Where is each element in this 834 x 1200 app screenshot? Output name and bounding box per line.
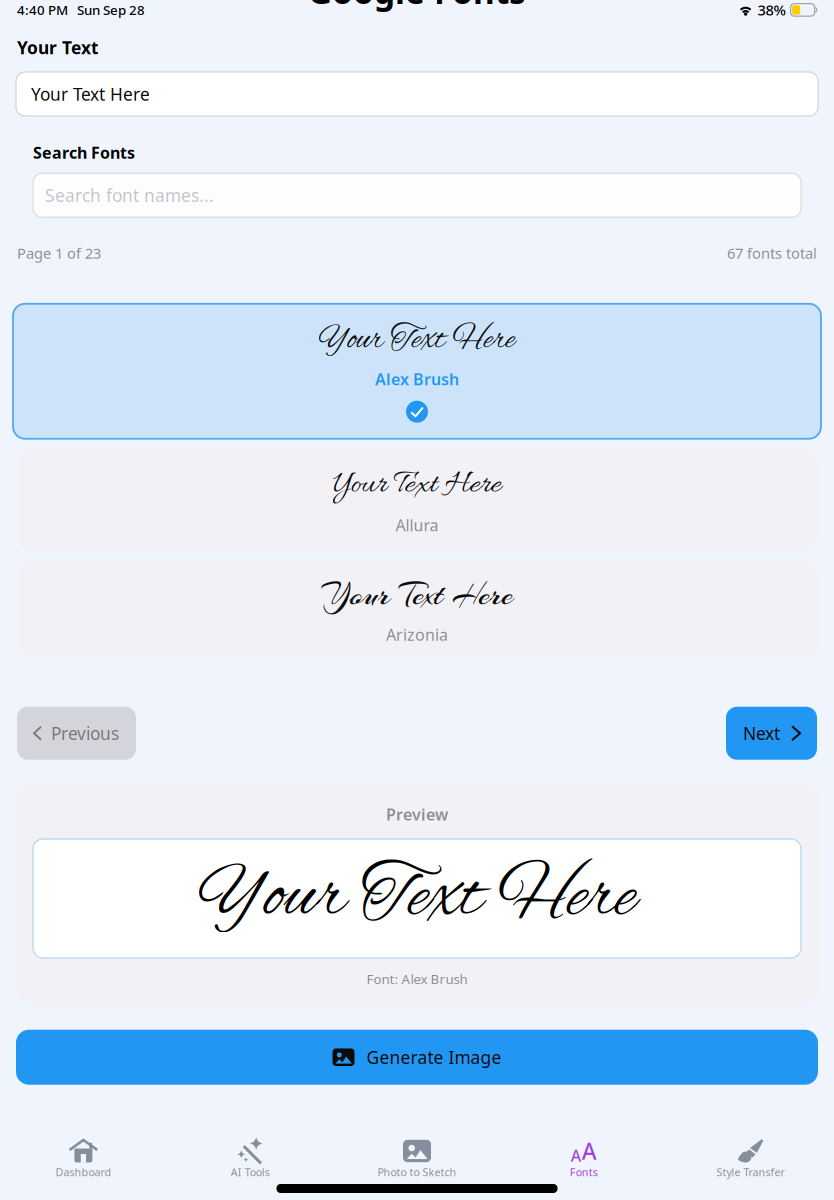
button[interactable]: Dashboard xyxy=(0,1138,167,1190)
staticText: Your Text Here xyxy=(321,574,513,616)
staticText: Allura xyxy=(395,514,438,536)
staticText: Generate Image xyxy=(366,1046,501,1069)
staticText: Alex Brush xyxy=(375,368,459,390)
button[interactable]: Generate Image xyxy=(16,1030,818,1085)
staticText: 67 fonts total xyxy=(727,243,817,263)
button[interactable]: Photo to Sketch xyxy=(334,1138,500,1190)
button[interactable]: Style Transfer xyxy=(667,1138,834,1190)
button[interactable]: Your Text Here xyxy=(0,564,834,656)
button[interactable]: Your Text Here xyxy=(0,452,834,549)
staticText: Your Text xyxy=(17,36,99,59)
button[interactable]: Previous xyxy=(17,707,136,760)
staticText: Arizonia xyxy=(386,624,448,645)
staticText: Previous xyxy=(51,722,119,745)
button[interactable]: A xyxy=(500,1138,667,1190)
staticText: Google Fonts xyxy=(308,0,526,13)
staticText: Font: Alex Brush xyxy=(366,970,467,988)
staticText: 4:40 PM xyxy=(17,1,68,19)
staticText: Search Fonts xyxy=(33,142,135,163)
staticText: Your Text Here xyxy=(318,320,515,361)
staticText: Your Text Here xyxy=(332,465,501,506)
staticText: Dashboard xyxy=(55,1165,111,1179)
staticText: A xyxy=(571,1145,581,1166)
staticText: Photo to Sketch xyxy=(377,1165,456,1179)
staticText: AI Tools xyxy=(231,1165,270,1179)
staticText: Next xyxy=(743,722,780,745)
button[interactable]: AI Tools xyxy=(167,1138,334,1190)
button[interactable]: Next xyxy=(726,707,817,760)
staticText: Your Text Here xyxy=(198,852,636,945)
staticText: Page 1 of 23 xyxy=(17,243,101,263)
staticText: A xyxy=(582,1136,597,1166)
staticText: 38% xyxy=(758,0,786,20)
staticText: Search font names... xyxy=(45,184,214,207)
staticText: Sun Sep 28 xyxy=(77,1,145,19)
button[interactable]: Your Text Here xyxy=(13,304,821,439)
staticText: Fonts xyxy=(570,1165,598,1179)
staticText: Preview xyxy=(386,804,448,825)
staticText: Style Transfer xyxy=(717,1165,785,1179)
staticText: Your Text Here xyxy=(31,82,150,105)
